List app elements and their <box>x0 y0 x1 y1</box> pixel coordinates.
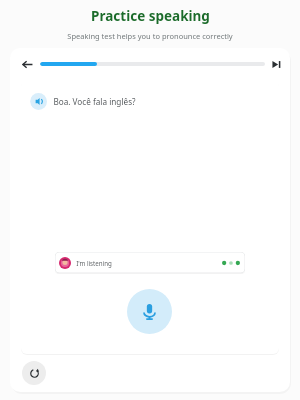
button[interactable]: Restart <box>22 361 46 385</box>
staticText: Boa. Você fala inglês? <box>53 96 136 107</box>
button[interactable]: Play audio <box>30 91 136 111</box>
button[interactable]: I'm listening <box>55 252 245 273</box>
button[interactable]: Record with microphone <box>127 289 172 334</box>
staticText: I'm listening <box>76 259 112 267</box>
staticText: Practice speaking <box>91 7 210 25</box>
button[interactable]: Skip <box>267 55 285 73</box>
button[interactable]: Back <box>17 54 37 74</box>
other: Play audio <box>30 93 47 110</box>
staticText: Speaking test helps you to pronounce cor… <box>67 31 233 41</box>
